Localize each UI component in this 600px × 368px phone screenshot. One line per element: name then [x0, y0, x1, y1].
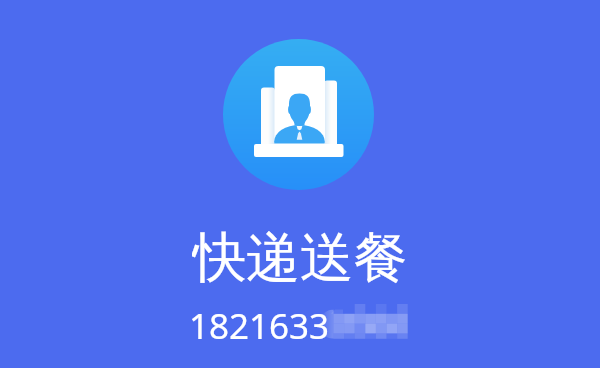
staticText: 快递送餐: [192, 224, 408, 288]
button[interactable]: Contact avatar: [223, 39, 374, 190]
staticText: 1821633: [189, 302, 330, 344]
